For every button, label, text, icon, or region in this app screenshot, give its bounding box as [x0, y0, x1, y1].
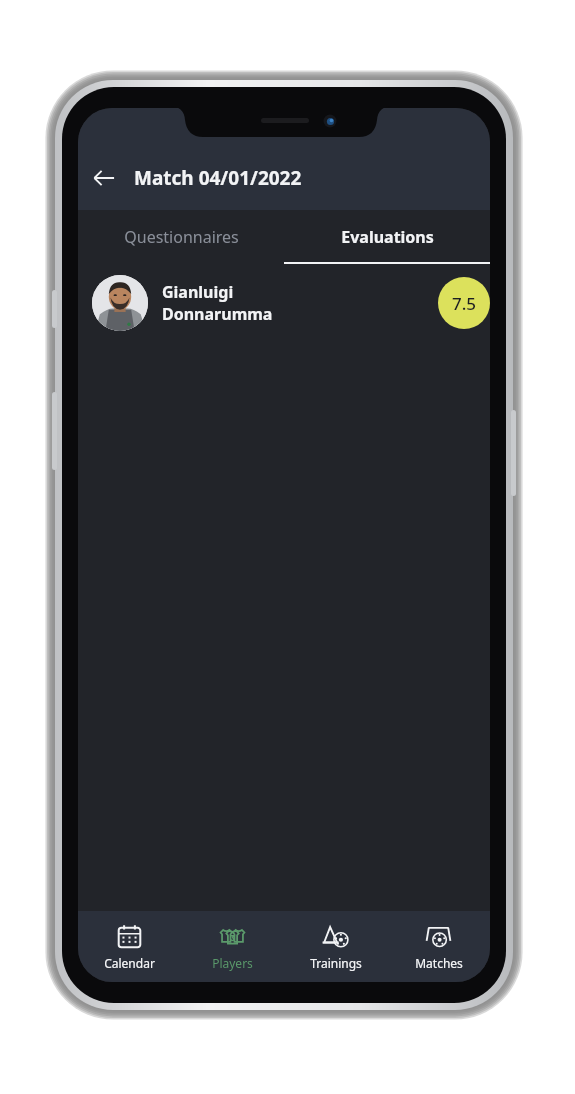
- button[interactable]: Questionnaires: [78, 210, 284, 264]
- staticText: Matches: [415, 955, 463, 971]
- button[interactable]: Gianluigi: [78, 264, 490, 342]
- staticText: Evaluations: [341, 226, 434, 248]
- staticText: Match 04/01/2022: [134, 165, 302, 191]
- button[interactable]: Players: [181, 915, 284, 979]
- button[interactable]: Back: [82, 156, 126, 200]
- staticText: Players: [212, 955, 253, 971]
- staticText: Questionnaires: [124, 226, 239, 248]
- button[interactable]: Calendar: [78, 915, 181, 979]
- staticText: Gianluigi: [162, 281, 234, 303]
- button[interactable]: Matches: [387, 915, 490, 979]
- button[interactable]: Trainings: [284, 915, 387, 979]
- staticText: 7.5: [452, 292, 477, 315]
- staticText: Donnarumma: [162, 303, 273, 325]
- staticText: Trainings: [310, 955, 362, 971]
- staticText: Calendar: [104, 955, 155, 971]
- button[interactable]: Evaluations: [284, 210, 490, 264]
